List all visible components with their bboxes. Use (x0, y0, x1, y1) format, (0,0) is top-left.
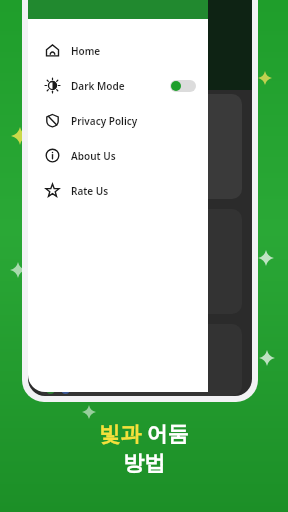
staticText: About Us (71, 149, 116, 163)
button[interactable]: Toggle dark mode (170, 80, 196, 92)
button[interactable]: Home (28, 33, 208, 68)
staticText: 빛과 어둠 (99, 419, 189, 448)
staticText: Home (71, 44, 101, 58)
button[interactable]: Dark Mode (28, 68, 208, 103)
button[interactable]: Rate Us (28, 173, 208, 208)
staticText: Rate Us (71, 184, 109, 198)
staticText: Dark Mode (71, 79, 125, 93)
button[interactable]: About Us (28, 138, 208, 173)
button[interactable]: Privacy Policy (28, 103, 208, 138)
staticText: 방법 (123, 450, 165, 476)
staticText: Privacy Policy (71, 114, 138, 128)
